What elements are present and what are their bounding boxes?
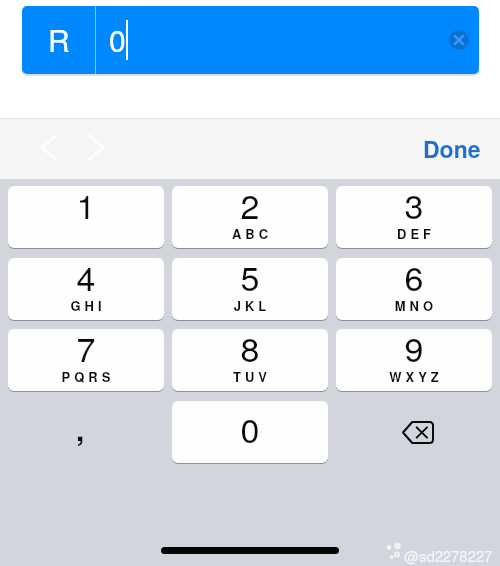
button[interactable]: Done: [412, 124, 492, 172]
staticText: 8: [172, 323, 328, 372]
staticText: @sd2278227: [404, 545, 493, 566]
staticText: 6: [336, 252, 492, 301]
staticText: TUV: [174, 367, 330, 386]
staticText: 7: [8, 323, 164, 372]
button[interactable]: 3: [336, 186, 492, 248]
staticText: PQRS: [10, 367, 166, 386]
staticText: 4: [8, 252, 164, 301]
button[interactable]: 5: [172, 258, 328, 320]
staticText: JKL: [174, 296, 330, 315]
button[interactable]: 4: [8, 258, 164, 320]
staticText: 2: [172, 180, 328, 229]
button[interactable]: Clear text: [449, 30, 469, 50]
button[interactable]: 0: [172, 401, 328, 463]
staticText: ABC: [174, 224, 330, 243]
staticText: DEF: [338, 224, 494, 243]
staticText: 9: [336, 323, 492, 372]
staticText: WXYZ: [338, 367, 494, 386]
button[interactable]: 8: [172, 329, 328, 391]
button[interactable]: 2: [172, 186, 328, 248]
button[interactable]: 9: [336, 329, 492, 391]
button[interactable]: ,: [8, 401, 164, 463]
staticText: ,: [76, 407, 85, 450]
button[interactable]: 6: [336, 258, 492, 320]
staticText: GHI: [10, 296, 166, 315]
button[interactable]: R: [22, 6, 479, 74]
button[interactable]: 7: [8, 329, 164, 391]
staticText: 5: [172, 252, 328, 301]
staticText: R: [48, 18, 70, 61]
staticText: 3: [336, 180, 492, 229]
staticText: 0: [172, 404, 328, 453]
staticText: MNO: [338, 296, 494, 315]
button[interactable]: Backspace: [336, 401, 492, 463]
staticText: 0: [109, 18, 126, 61]
staticText: Done: [423, 132, 481, 165]
button[interactable]: 1: [8, 186, 164, 248]
staticText: 1: [8, 180, 164, 229]
